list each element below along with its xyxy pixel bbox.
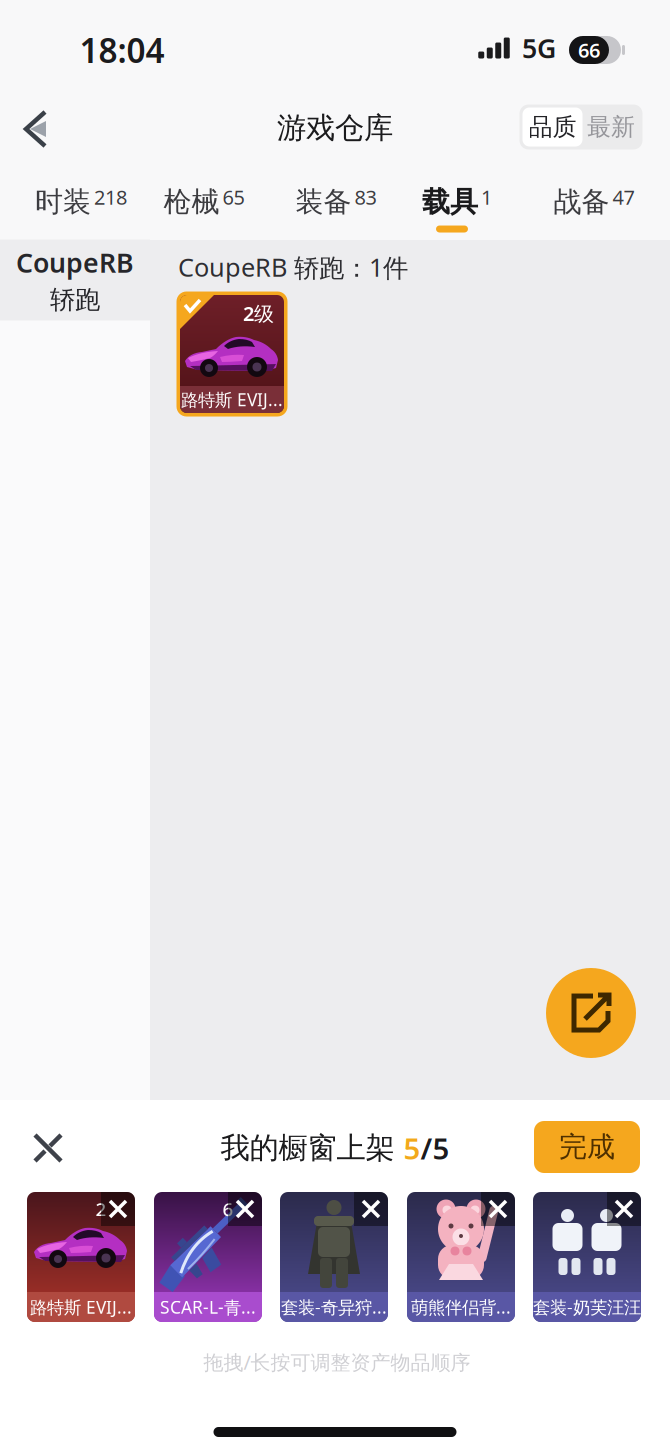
button[interactable]: 完成 xyxy=(534,1121,640,1173)
button[interactable]: 时装 xyxy=(35,185,127,219)
staticText: 65 xyxy=(222,184,244,210)
button[interactable]: 载具 xyxy=(422,185,492,219)
button[interactable]: 移除 xyxy=(101,1192,135,1226)
button[interactable]: 套装-奇异狩... xyxy=(280,1192,388,1322)
staticText: 路特斯 EVIJ... xyxy=(181,388,283,411)
button[interactable]: 战备 xyxy=(553,185,634,219)
staticText: SCAR-L-青... xyxy=(160,1295,256,1318)
staticText: 2 xyxy=(95,1197,106,1221)
staticText: 47 xyxy=(612,184,634,210)
staticText: 18:04 xyxy=(79,28,164,72)
staticText: CoupeRB 轿跑：1件 xyxy=(178,250,408,284)
button[interactable]: 移除 xyxy=(481,1192,515,1226)
staticText: 6 xyxy=(222,1197,233,1221)
staticText: 套装-奇异狩... xyxy=(281,1295,387,1318)
button[interactable]: 最新 xyxy=(582,107,639,146)
staticText: 最新 xyxy=(587,112,635,142)
staticText: 5 xyxy=(403,1128,420,1167)
button[interactable]: 路特斯 EVIJ... xyxy=(176,291,287,416)
staticText: CoupeRB xyxy=(16,245,134,280)
button[interactable]: 移除 xyxy=(228,1192,262,1226)
button[interactable]: 品质 xyxy=(522,107,582,146)
staticText: /5 xyxy=(420,1128,449,1167)
button[interactable]: 返回 xyxy=(10,100,66,156)
staticText: 装备 xyxy=(295,185,351,219)
button[interactable]: 分享上架 xyxy=(546,968,636,1058)
button[interactable]: CoupeRB xyxy=(0,239,150,320)
button[interactable]: 枪械 xyxy=(163,185,244,219)
button[interactable]: 萌熊伴侣背... xyxy=(407,1192,515,1322)
staticText: 萌熊伴侣背... xyxy=(411,1295,511,1318)
staticText: 载具 xyxy=(422,185,478,219)
button[interactable]: 套装-奶芙汪汪 xyxy=(533,1192,641,1322)
button[interactable]: SCAR-L-青... xyxy=(154,1192,262,1322)
staticText: 品质 xyxy=(528,112,576,142)
staticText: 轿跑 xyxy=(50,284,100,315)
staticText: 2级 xyxy=(243,300,274,327)
button[interactable]: 路特斯 EVIJ... xyxy=(27,1192,135,1322)
staticText: 战备 xyxy=(553,185,609,219)
staticText: 枪械 xyxy=(163,185,219,219)
button[interactable]: 装备 xyxy=(295,185,376,219)
staticText: 66 xyxy=(578,37,600,63)
staticText: 套装-奶芙汪汪 xyxy=(533,1295,641,1318)
staticText: 我的橱窗上架 xyxy=(220,1130,403,1166)
staticText: 游戏仓库 xyxy=(277,110,393,146)
staticText: 拖拽/长按可调整资产物品顺序 xyxy=(203,1349,470,1375)
staticText: 83 xyxy=(354,184,376,210)
staticText: 1 xyxy=(481,184,492,210)
staticText: 218 xyxy=(94,184,127,210)
staticText: 路特斯 EVIJ... xyxy=(30,1295,132,1318)
button[interactable]: 移除 xyxy=(354,1192,388,1226)
staticText: 5G xyxy=(522,30,556,66)
button[interactable]: 移除 xyxy=(607,1192,641,1226)
button[interactable]: 关闭 xyxy=(28,1128,68,1168)
staticText: 时装 xyxy=(35,185,91,219)
staticText: 完成 xyxy=(559,1130,615,1164)
